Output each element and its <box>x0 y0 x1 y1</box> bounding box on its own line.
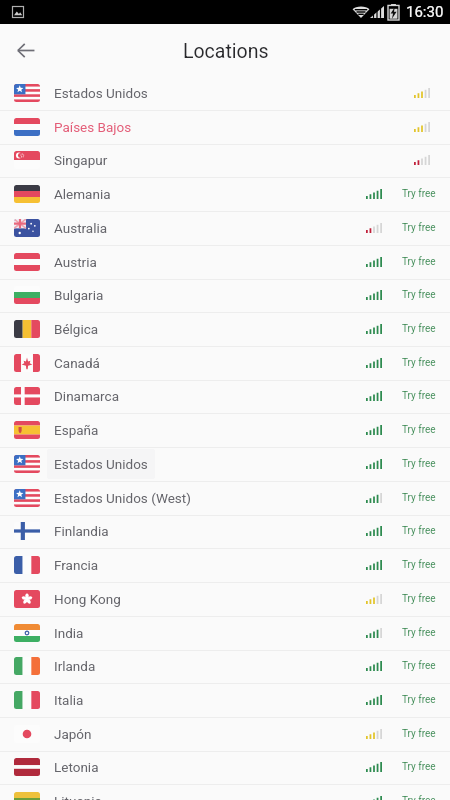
staticText: Finlandia <box>54 523 109 539</box>
button[interactable]: Hong Kong <box>0 582 450 617</box>
staticText: Bulgaria <box>54 287 104 303</box>
staticText: 16:30 <box>406 3 444 21</box>
staticText: Try free <box>402 593 436 605</box>
staticText: Try free <box>402 525 436 537</box>
staticText: Lituania <box>54 793 102 800</box>
button[interactable]: Dinamarca <box>0 379 450 414</box>
staticText: Estados Unidos <box>54 85 148 101</box>
button[interactable]: Alemania <box>0 177 450 212</box>
staticText: Try free <box>402 660 436 672</box>
staticText: Dinamarca <box>54 388 119 404</box>
staticText: Try free <box>402 728 436 740</box>
button[interactable]: India <box>0 616 450 651</box>
button[interactable]: Letonia <box>0 750 450 785</box>
button[interactable]: Países Bajos <box>0 110 450 145</box>
button[interactable]: Estados Unidos <box>0 76 450 111</box>
staticText: Try free <box>402 492 436 504</box>
button[interactable]: Italia <box>0 683 450 718</box>
staticText: Try free <box>402 222 436 234</box>
staticText: Alemania <box>54 186 111 202</box>
staticText: Bélgica <box>54 321 99 337</box>
button[interactable]: Irlanda <box>0 649 450 684</box>
staticText: Japón <box>54 726 92 742</box>
button[interactable]: Lituania <box>0 784 450 800</box>
staticText: Hong Kong <box>54 591 121 607</box>
button[interactable]: Estados Unidos <box>0 447 450 482</box>
staticText: España <box>54 422 99 438</box>
staticText: Try free <box>402 188 436 200</box>
staticText: Canadá <box>54 355 100 371</box>
button[interactable]: Austria <box>0 245 450 280</box>
staticText: Try free <box>402 357 436 369</box>
staticText: Francia <box>54 557 99 573</box>
staticText: Try free <box>402 323 436 335</box>
staticText: Singapur <box>54 152 108 168</box>
staticText: Estados Unidos <box>54 456 148 472</box>
staticText: Australia <box>54 220 108 236</box>
button[interactable]: Finlandia <box>0 514 450 549</box>
staticText: Try free <box>402 694 436 706</box>
staticText: Irlanda <box>54 658 96 674</box>
staticText: Locations <box>183 40 269 63</box>
staticText: Try free <box>402 795 436 800</box>
staticText: Try free <box>402 256 436 268</box>
staticText: Países Bajos <box>54 119 132 135</box>
button[interactable]: Bulgaria <box>0 278 450 313</box>
button[interactable]: Singapur <box>0 143 450 178</box>
button[interactable]: Canadá <box>0 346 450 381</box>
staticText: Try free <box>402 390 436 402</box>
button[interactable]: Back <box>4 28 48 72</box>
button[interactable]: Australia <box>0 211 450 246</box>
staticText: Try free <box>402 289 436 301</box>
staticText: Austria <box>54 254 97 270</box>
staticText: Try free <box>402 761 436 773</box>
staticText: India <box>54 625 84 641</box>
staticText: Try free <box>402 458 436 470</box>
staticText: Try free <box>402 559 436 571</box>
button[interactable]: Japón <box>0 717 450 752</box>
staticText: Letonia <box>54 759 99 775</box>
button[interactable]: España <box>0 413 450 448</box>
staticText: Try free <box>402 424 436 436</box>
button[interactable]: Bélgica <box>0 312 450 347</box>
button[interactable]: Estados Unidos (West) <box>0 481 450 516</box>
staticText: Italia <box>54 692 84 708</box>
staticText: Try free <box>402 627 436 639</box>
staticText: Estados Unidos (West) <box>54 490 191 506</box>
button[interactable]: Francia <box>0 548 450 583</box>
